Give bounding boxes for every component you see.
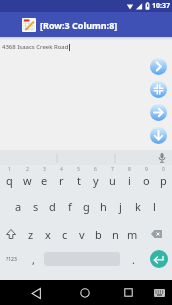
button[interactable]: w (18, 168, 36, 193)
staticText: t (77, 173, 81, 188)
staticText: 8 (128, 166, 131, 173)
button[interactable]: k (129, 193, 146, 220)
button[interactable]: c (56, 220, 73, 248)
staticText: m (127, 227, 138, 242)
staticText: , (32, 252, 35, 267)
button[interactable]: y (87, 168, 104, 193)
staticText: a (15, 199, 22, 214)
button[interactable]: v (73, 220, 90, 248)
staticText: p (160, 173, 167, 188)
button[interactable]: m (124, 220, 141, 248)
staticText: h (100, 199, 107, 214)
button[interactable]: d (44, 193, 61, 220)
button[interactable]: n (107, 220, 124, 248)
staticText: 1 (8, 166, 11, 173)
button[interactable] (150, 104, 167, 121)
staticText: e (41, 173, 48, 188)
button[interactable]: j (112, 193, 129, 220)
button[interactable] (150, 81, 167, 98)
staticText: 3 (43, 166, 46, 173)
staticText: 4368 Isaacs Creek Road (2, 43, 69, 51)
staticText: . (132, 252, 135, 267)
button[interactable] (150, 127, 167, 144)
button[interactable]: f (61, 193, 78, 220)
staticText: 0 (162, 166, 165, 173)
button[interactable]: h (95, 193, 112, 220)
staticText: 6 (94, 166, 97, 173)
staticText: c (62, 227, 68, 242)
staticText: f (68, 199, 72, 214)
staticText: w (23, 173, 32, 188)
button[interactable] (141, 220, 172, 248)
button[interactable]: o (138, 168, 155, 193)
staticText: u (109, 173, 116, 188)
button[interactable]: z (22, 220, 39, 248)
button[interactable]: r (53, 168, 70, 193)
button[interactable]: . (120, 248, 146, 270)
button[interactable]: s (27, 193, 44, 220)
button[interactable]: i (121, 168, 138, 193)
staticText: 5 (77, 166, 80, 173)
staticText: n (112, 227, 119, 242)
button[interactable] (124, 288, 133, 297)
staticText: 9 (145, 166, 148, 173)
button[interactable]: ?123 (0, 248, 23, 270)
staticText: i (128, 173, 131, 188)
button[interactable]: g (78, 193, 95, 220)
staticText: v (79, 227, 85, 242)
button[interactable] (80, 288, 90, 298)
button[interactable] (0, 220, 22, 248)
staticText: b (95, 227, 102, 242)
button[interactable]: , (23, 248, 44, 270)
staticText: 7 (111, 166, 114, 173)
staticText: [Row:3 Column:8] (40, 19, 118, 31)
button[interactable]: a (9, 193, 27, 220)
staticText: k (135, 199, 141, 214)
staticText: x (45, 227, 51, 242)
button[interactable]: u (104, 168, 121, 193)
staticText: 10:37 (152, 1, 170, 11)
button[interactable] (150, 250, 168, 268)
button[interactable] (150, 58, 167, 75)
staticText: j (119, 199, 122, 214)
staticText: 2 (26, 166, 29, 173)
button[interactable] (154, 289, 165, 297)
staticText: y (93, 173, 99, 188)
staticText: g (83, 199, 90, 214)
staticText: l (153, 199, 156, 214)
button[interactable]: p (155, 168, 172, 193)
staticText: s (33, 199, 39, 214)
button[interactable]: b (90, 220, 107, 248)
button[interactable]: e (36, 168, 53, 193)
button[interactable]: l (146, 193, 163, 220)
staticText: q (6, 173, 13, 188)
staticText: ?123 (6, 256, 17, 263)
staticText: d (49, 199, 56, 214)
staticText: 4 (60, 166, 63, 173)
button[interactable]: t (70, 168, 87, 193)
button[interactable]: q (0, 168, 18, 193)
staticText: r (59, 173, 64, 188)
button[interactable]: x (39, 220, 56, 248)
staticText: z (28, 227, 34, 242)
button[interactable] (31, 288, 42, 299)
staticText: o (143, 173, 150, 188)
